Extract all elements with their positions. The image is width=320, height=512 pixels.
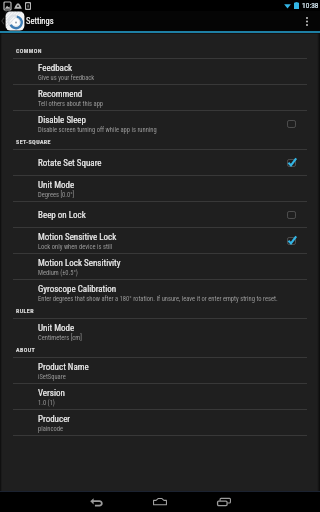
button[interactable]: Disable Sleep (0, 111, 320, 137)
staticText: COMMON (16, 47, 42, 54)
button[interactable]: Recent apps (201, 491, 247, 512)
staticText: Settings (26, 16, 54, 26)
button[interactable]: Beep on Lock (0, 202, 320, 228)
staticText: Producer (38, 414, 71, 425)
staticText: Feedback (38, 63, 73, 74)
button[interactable]: Navigate up (0, 11, 25, 31)
staticText: Unit Mode (38, 323, 75, 334)
button[interactable]: Unit Mode (0, 176, 320, 202)
staticText: Rotate Set Square (38, 158, 102, 169)
staticText: Disable Sleep (38, 115, 87, 126)
staticText: RULER (16, 307, 34, 314)
staticText: Degrees [0.0°] (38, 191, 75, 199)
button[interactable]: Producer (0, 410, 320, 436)
staticText: Gyroscope Calibration (38, 284, 117, 295)
staticText: Tell others about this app (38, 100, 104, 108)
button[interactable]: Back (73, 491, 119, 512)
button[interactable]: Recommend (0, 85, 320, 111)
staticText: Beep on Lock (38, 210, 86, 221)
staticText: Lock only when device is still (38, 243, 113, 251)
staticText: Recommend (38, 89, 83, 100)
button[interactable]: Version (0, 384, 320, 410)
button[interactable]: Feedback (0, 59, 320, 85)
staticText: Centimeters [cm] (38, 334, 82, 342)
staticText: plaincode (38, 425, 63, 433)
staticText: ABOUT (16, 346, 36, 353)
staticText: Unit Mode (38, 180, 75, 191)
staticText: Motion Lock Sensitivity (38, 258, 121, 269)
staticText: Enter degrees that show after a 180° rot… (38, 295, 278, 303)
staticText: Motion Sensitive Lock (38, 232, 117, 243)
button[interactable]: Unit Mode (0, 319, 320, 345)
button[interactable]: Motion Sensitive Lock (0, 228, 320, 254)
button[interactable]: More options (298, 11, 316, 31)
staticText: SET-SQUARE (16, 138, 51, 145)
staticText: Medium (±0.5°) (38, 269, 78, 277)
button[interactable]: Gyroscope Calibration (0, 280, 320, 306)
button[interactable]: Product Name (0, 358, 320, 384)
staticText: 10:38 (302, 1, 319, 10)
staticText: Disable screen turning off while app is … (38, 126, 157, 134)
button[interactable]: Rotate Set Square (0, 150, 320, 176)
staticText: Version (38, 388, 65, 399)
staticText: Give us your feedback (38, 74, 95, 82)
staticText: Product Name (38, 362, 89, 373)
staticText: iSetSquare (38, 373, 66, 381)
button[interactable]: Home (137, 491, 183, 512)
staticText: 1.0 (1) (38, 399, 55, 407)
button[interactable]: Motion Lock Sensitivity (0, 254, 320, 280)
